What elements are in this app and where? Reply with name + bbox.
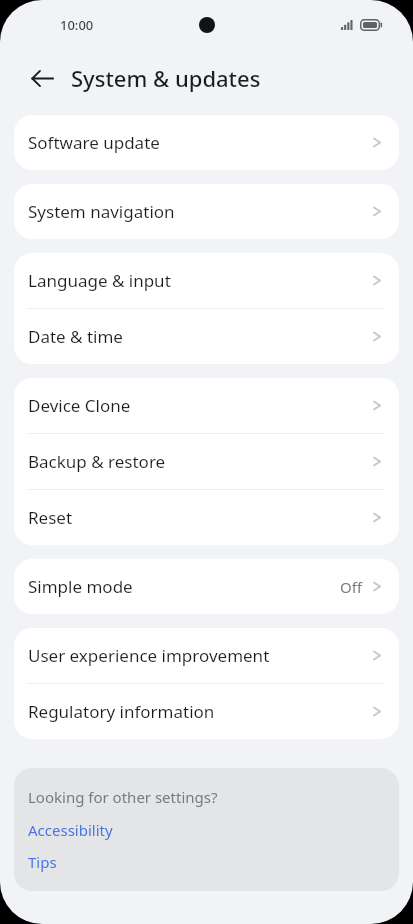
button[interactable]: Simple mode [14,559,399,614]
button[interactable]: Accessibility [28,820,113,840]
staticText: Reset [28,506,372,529]
button[interactable]: Reset [14,490,399,545]
staticText: System & updates [71,63,261,93]
staticText: Looking for other settings? [28,787,218,807]
button[interactable]: Backup & restore [14,434,399,489]
button[interactable]: Back [20,56,64,100]
staticText: Backup & restore [28,450,372,473]
staticText: Software update [28,131,372,154]
staticText: Device Clone [28,394,372,417]
button[interactable]: Device Clone [14,378,399,433]
button[interactable]: System navigation [14,184,399,239]
button[interactable]: Software update [14,115,399,170]
staticText: Off [340,577,363,597]
staticText: Language & input [28,269,372,292]
staticText: 10:00 [60,16,94,34]
button[interactable]: User experience improvement [14,628,399,683]
button[interactable]: Language & input [14,253,399,308]
staticText: User experience improvement [28,644,372,667]
staticText: Simple mode [28,575,340,598]
staticText: Date & time [28,325,372,348]
staticText: System navigation [28,200,372,223]
button[interactable]: Regulatory information [14,684,399,739]
button[interactable]: Date & time [14,309,399,364]
staticText: Regulatory information [28,700,372,723]
button[interactable]: Tips [28,852,57,872]
